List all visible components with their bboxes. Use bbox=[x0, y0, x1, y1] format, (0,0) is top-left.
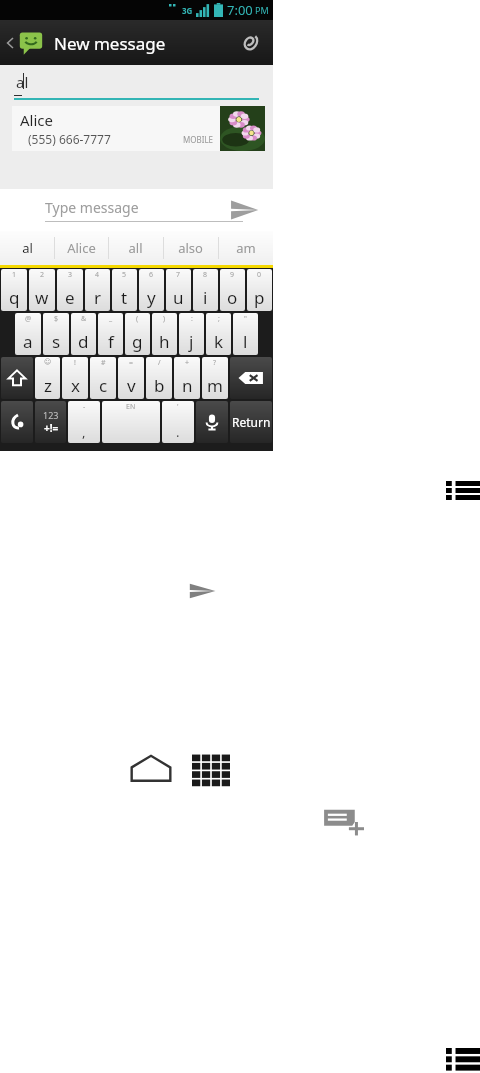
staticText: i bbox=[203, 286, 208, 309]
button[interactable]: Send bbox=[186, 578, 218, 604]
button[interactable]: Return bbox=[230, 401, 272, 443]
button[interactable]: ! bbox=[62, 357, 88, 399]
staticText: 123 bbox=[43, 409, 59, 421]
staticText: 9 bbox=[230, 270, 235, 280]
staticText: t bbox=[121, 286, 128, 309]
button[interactable]: Numbers bbox=[35, 401, 66, 443]
button[interactable]: ) bbox=[152, 313, 177, 355]
staticText: a bbox=[23, 330, 33, 353]
staticText: 3G bbox=[182, 5, 193, 16]
staticText: e bbox=[65, 286, 75, 309]
staticText: 4 bbox=[95, 270, 100, 280]
button[interactable]: 1 bbox=[1, 269, 27, 311]
button[interactable]: $ bbox=[43, 313, 69, 355]
button[interactable]: 6 bbox=[139, 269, 164, 311]
staticText: all bbox=[128, 239, 143, 257]
button[interactable]: # bbox=[90, 357, 116, 399]
staticText: also bbox=[178, 239, 203, 257]
staticText: 3 bbox=[68, 270, 73, 280]
staticText: 7:00 bbox=[227, 1, 253, 19]
button[interactable]: - bbox=[68, 401, 100, 443]
staticText: 7 bbox=[176, 270, 181, 280]
staticText: f bbox=[108, 330, 114, 353]
button[interactable]: Shift bbox=[1, 357, 33, 399]
button[interactable]: 8 bbox=[193, 269, 218, 311]
button[interactable]: al bbox=[0, 231, 54, 265]
staticText: +!= bbox=[44, 421, 59, 435]
staticText: g bbox=[132, 330, 143, 353]
staticText: 1 bbox=[12, 270, 17, 280]
staticText: w bbox=[35, 286, 49, 309]
button[interactable]: Attach bbox=[227, 20, 273, 65]
button[interactable]: ? bbox=[202, 357, 228, 399]
button[interactable]: New message bbox=[322, 806, 364, 838]
button[interactable]: 0 bbox=[247, 269, 272, 311]
staticText: Return bbox=[232, 414, 271, 430]
button[interactable]: Apps bbox=[192, 752, 230, 784]
button[interactable]: List bbox=[446, 481, 480, 502]
button[interactable]: 9 bbox=[220, 269, 245, 311]
button[interactable]: " bbox=[233, 313, 258, 355]
button[interactable]: & bbox=[71, 313, 96, 355]
staticText: + bbox=[185, 358, 190, 368]
button[interactable]: 4 bbox=[85, 269, 110, 311]
staticText: ? bbox=[213, 358, 217, 368]
button[interactable]: Handwriting bbox=[1, 401, 33, 443]
staticText: d bbox=[78, 330, 89, 353]
button[interactable]: : bbox=[179, 313, 204, 355]
staticText: , bbox=[82, 423, 86, 441]
button[interactable]: 2 bbox=[29, 269, 55, 311]
button[interactable]: all bbox=[108, 231, 163, 265]
staticText: PM bbox=[255, 4, 269, 16]
button[interactable]: / bbox=[146, 357, 172, 399]
button[interactable]: ( bbox=[125, 313, 150, 355]
button[interactable]: Send bbox=[227, 193, 261, 227]
staticText: : bbox=[191, 314, 193, 324]
button[interactable]: List bbox=[446, 1048, 480, 1073]
staticText: ' bbox=[177, 402, 179, 412]
staticText: x bbox=[71, 374, 80, 397]
button[interactable]: also bbox=[163, 231, 218, 265]
button[interactable]: Home bbox=[128, 752, 174, 784]
staticText: ! bbox=[74, 358, 76, 368]
staticText: . bbox=[176, 423, 180, 441]
staticText: o bbox=[227, 286, 238, 309]
staticText: y bbox=[147, 286, 156, 309]
button[interactable]: 5 bbox=[112, 269, 137, 311]
staticText: 8 bbox=[203, 270, 208, 280]
staticText: 6 bbox=[149, 270, 154, 280]
staticText: am bbox=[236, 239, 256, 257]
staticText: r bbox=[94, 286, 102, 309]
staticText: # bbox=[101, 358, 106, 368]
staticText: " bbox=[244, 314, 247, 324]
staticText: Type message bbox=[45, 198, 139, 217]
button[interactable]: EN bbox=[102, 401, 160, 443]
staticText: 5 bbox=[122, 270, 127, 280]
button[interactable]: Voice input bbox=[196, 401, 228, 443]
staticText: u bbox=[173, 286, 184, 309]
staticText: Alice bbox=[67, 239, 96, 257]
button[interactable]: Alice bbox=[12, 106, 265, 151]
button[interactable]: ' bbox=[162, 401, 194, 443]
button[interactable]: am bbox=[218, 231, 273, 265]
button[interactable]: New message bbox=[4, 30, 166, 56]
button[interactable]: 3 bbox=[57, 269, 83, 311]
button[interactable]: + bbox=[174, 357, 200, 399]
staticText: ( bbox=[136, 314, 139, 324]
button[interactable]: Backspace bbox=[230, 357, 272, 399]
button[interactable]: = bbox=[118, 357, 144, 399]
staticText: EN bbox=[126, 402, 136, 412]
button[interactable]: ☺ bbox=[35, 357, 60, 399]
button[interactable]: _ bbox=[98, 313, 123, 355]
button[interactable]: Alice bbox=[54, 231, 108, 265]
staticText: @ bbox=[25, 314, 32, 324]
staticText: v bbox=[127, 374, 136, 397]
button[interactable]: @ bbox=[15, 313, 41, 355]
staticText: q bbox=[9, 286, 20, 309]
staticText: b bbox=[154, 374, 165, 397]
button[interactable]: 7 bbox=[166, 269, 191, 311]
staticText: al bbox=[16, 72, 29, 92]
button[interactable]: ; bbox=[206, 313, 231, 355]
staticText: al bbox=[22, 239, 33, 257]
staticText: $ bbox=[54, 314, 59, 324]
